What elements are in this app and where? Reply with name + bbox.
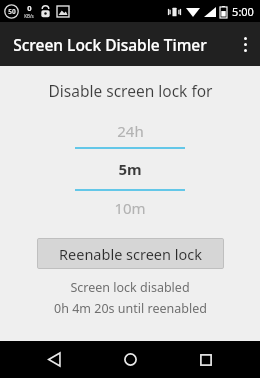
staticText: 10m	[114, 198, 146, 218]
staticText: 24h	[117, 121, 144, 141]
staticText: Screen Lock Disable Timer	[13, 34, 207, 55]
staticText: KB/s	[24, 13, 34, 19]
button[interactable]: Recent apps	[184, 341, 228, 378]
button[interactable]: Reenable screen lock	[37, 238, 224, 269]
staticText: Screen lock disabled	[70, 279, 190, 296]
staticText: 0	[27, 3, 32, 13]
button[interactable]: Back	[32, 341, 76, 378]
button[interactable]: 10m	[75, 191, 185, 224]
button[interactable]: 24h	[75, 114, 185, 147]
staticText: Disable screen lock for	[48, 80, 213, 101]
staticText: 50	[8, 7, 16, 16]
button[interactable]: More options	[230, 22, 260, 66]
button[interactable]: Home	[108, 341, 152, 378]
button[interactable]: 5m	[75, 149, 185, 189]
staticText: 0h 4m 20s until reenabled	[54, 300, 207, 317]
staticText: 5:00	[232, 4, 254, 19]
staticText: Reenable screen lock	[59, 244, 202, 264]
staticText: 5m	[118, 159, 142, 179]
